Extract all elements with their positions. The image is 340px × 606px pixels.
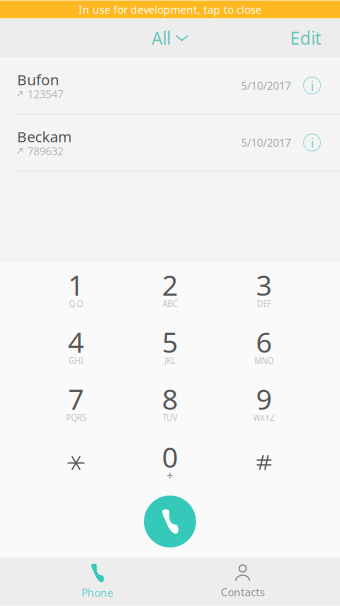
staticText: All	[151, 26, 170, 49]
staticText: 123547	[28, 87, 64, 101]
staticText: Edit	[290, 26, 321, 49]
staticText: 3	[256, 266, 272, 304]
staticText: ABC	[162, 299, 177, 309]
staticText: 5	[162, 323, 178, 361]
staticText: 5/10/2017	[241, 135, 291, 150]
button[interactable]: Edit	[290, 18, 340, 57]
button[interactable]: Call	[139, 490, 201, 552]
button[interactable]: Pound	[217, 433, 311, 490]
button[interactable]: 3	[217, 262, 311, 319]
staticText: 6	[256, 323, 272, 361]
button[interactable]: All	[135, 18, 205, 57]
staticText: MNO	[254, 356, 273, 366]
button[interactable]: 2	[123, 262, 217, 319]
staticText: Beckam	[17, 127, 72, 146]
staticText: 9	[256, 380, 272, 418]
button[interactable]: 1	[29, 262, 123, 319]
staticText: 8	[162, 380, 178, 418]
staticText: JKL	[164, 356, 175, 366]
button[interactable]: 6	[217, 319, 311, 376]
button[interactable]: 4	[29, 319, 123, 376]
staticText: 5/10/2017	[241, 78, 291, 93]
button[interactable]: 5	[123, 319, 217, 376]
staticText: 789632	[28, 144, 64, 158]
button[interactable]: Phone	[49, 558, 145, 604]
staticText: GHI	[68, 356, 83, 366]
staticText: WXYZ	[253, 413, 275, 423]
staticText: i	[310, 77, 313, 94]
staticText: i	[310, 134, 313, 151]
staticText: In use for development, tap to close	[78, 2, 261, 17]
staticText: PQRS	[66, 413, 86, 423]
button[interactable]: 7	[29, 376, 123, 433]
staticText: 2	[162, 266, 178, 304]
staticText: DEF	[257, 299, 271, 309]
button[interactable]: 9	[217, 376, 311, 433]
button[interactable]: Star	[29, 433, 123, 490]
staticText: Phone	[81, 585, 113, 600]
staticText: 7	[68, 380, 84, 418]
staticText: 1	[68, 266, 84, 304]
staticText: Q.O	[69, 299, 83, 309]
staticText: Contacts	[221, 585, 265, 599]
staticText: 0	[162, 438, 178, 476]
button[interactable]: Contacts	[195, 558, 291, 604]
button[interactable]: Zero plus	[123, 433, 217, 490]
button[interactable]: Beckam	[0, 114, 340, 170]
staticText: 4	[68, 323, 84, 361]
staticText: TUV	[162, 413, 177, 423]
button[interactable]: Bufon	[0, 57, 340, 113]
staticText: Bufon	[17, 70, 59, 89]
button[interactable]: In use for development, tap to close	[0, 0, 340, 18]
button[interactable]: 8	[123, 376, 217, 433]
